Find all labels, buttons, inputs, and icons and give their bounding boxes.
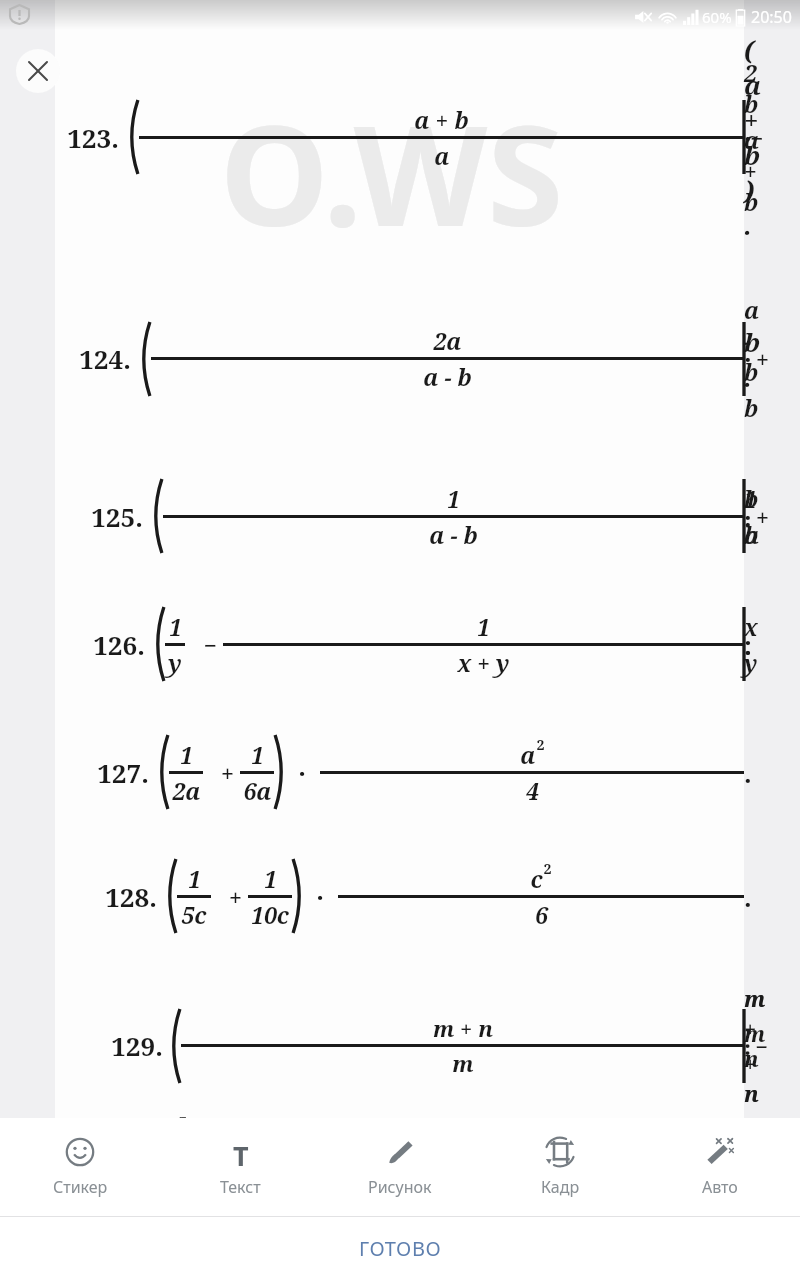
staticText: 6	[535, 899, 548, 930]
staticText: 2a	[433, 325, 462, 356]
staticText: +	[211, 881, 248, 912]
staticText: a	[434, 140, 450, 171]
staticText: −	[185, 629, 223, 660]
staticText: 4	[526, 775, 539, 806]
staticText: 1	[188, 863, 201, 894]
staticText: a	[520, 739, 536, 770]
staticText: Авто	[702, 1176, 738, 1198]
staticText: 1	[477, 611, 490, 642]
staticText: 126.	[93, 627, 145, 662]
staticText: O.WS	[47, 78, 736, 266]
staticText: 2	[536, 735, 545, 754]
staticText: 1	[264, 863, 277, 894]
staticText: a + b	[414, 104, 469, 135]
button[interactable]: ГОТОВО	[0, 1217, 800, 1280]
staticText: x + y	[457, 647, 510, 678]
staticText: 1	[169, 611, 182, 642]
staticText: 10c	[251, 899, 289, 930]
staticText: Рисунок	[368, 1176, 432, 1198]
staticText: ·	[316, 879, 324, 914]
staticText: 6a	[243, 775, 272, 806]
staticText: y	[168, 647, 182, 678]
staticText: 20:50	[751, 6, 792, 28]
staticText: a − b	[423, 361, 472, 392]
staticText: 1	[251, 739, 264, 770]
staticText: 124.	[79, 341, 131, 376]
staticText: 125.	[91, 499, 143, 534]
button[interactable]: Auto enhance	[640, 1131, 800, 1204]
button[interactable]: Crop	[480, 1131, 640, 1204]
staticText: m	[452, 1048, 474, 1078]
staticText: Стикер	[53, 1176, 108, 1198]
staticText: T	[233, 1137, 249, 1167]
staticText: 128.	[105, 879, 157, 914]
staticText: 123.	[67, 120, 119, 155]
staticText: c	[530, 863, 543, 894]
staticText: Кадр	[541, 1176, 580, 1198]
staticText: 1	[447, 483, 460, 514]
button[interactable]: Draw	[320, 1131, 480, 1204]
staticText: m + n	[433, 1013, 493, 1043]
staticText: Текст	[220, 1176, 261, 1198]
button[interactable]: Text	[220, 1131, 261, 1204]
staticText: ·	[298, 755, 306, 790]
staticText: 60%	[702, 7, 732, 27]
staticText: +	[203, 757, 240, 788]
staticText: 2a	[172, 775, 201, 806]
staticText: ГОТОВО	[359, 1235, 442, 1262]
staticText: a − b	[429, 519, 478, 550]
staticText: 129.	[111, 1028, 163, 1063]
button[interactable]: Sticker	[0, 1131, 160, 1204]
staticText: 5c	[181, 899, 207, 930]
button[interactable]: Close	[16, 49, 60, 93]
staticText: 2	[543, 859, 552, 878]
staticText: 127.	[97, 755, 149, 790]
staticText: 1	[180, 739, 193, 770]
